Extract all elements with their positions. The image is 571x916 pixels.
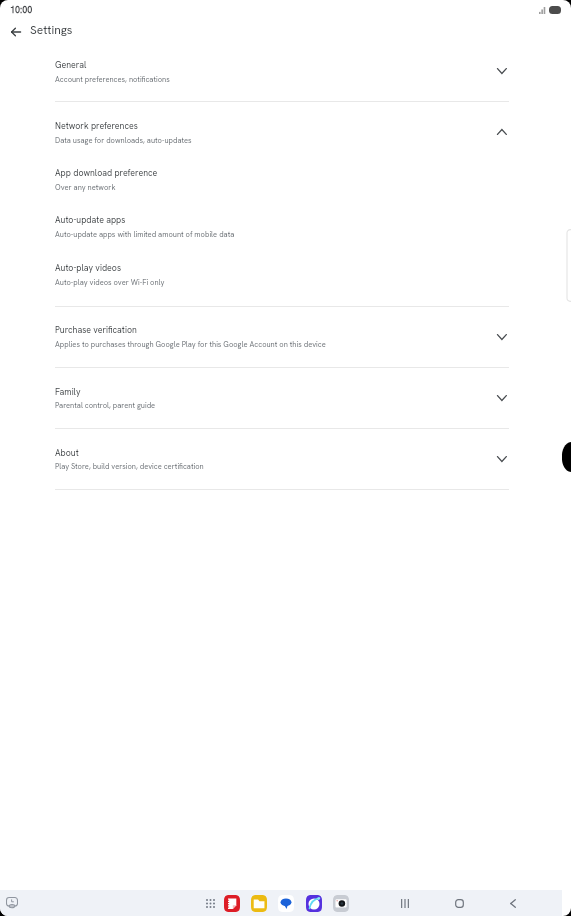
- staticText: Applies to purchases through Google Play…: [55, 339, 326, 349]
- button[interactable]: [55, 209, 509, 243]
- button[interactable]: [55, 54, 509, 88]
- button[interactable]: Back: [4, 20, 27, 43]
- staticText: About: [55, 447, 79, 458]
- button[interactable]: Internet: [306, 895, 322, 912]
- button[interactable]: Expand: [490, 325, 514, 349]
- button[interactable]: Home: [447, 891, 471, 915]
- staticText: Data usage for downloads, auto-updates: [55, 135, 192, 145]
- staticText: General: [55, 59, 87, 70]
- staticText: App download preference: [55, 167, 158, 178]
- button[interactable]: [55, 162, 509, 196]
- button[interactable]: Recents: [393, 891, 417, 915]
- staticText: Auto-play videos over Wi-Fi only: [55, 277, 165, 287]
- button[interactable]: Samsung Notes: [224, 895, 240, 912]
- button[interactable]: [55, 114, 509, 148]
- button[interactable]: Messages: [278, 895, 294, 912]
- button[interactable]: [55, 441, 509, 475]
- staticText: Settings: [30, 22, 73, 38]
- button[interactable]: [55, 257, 509, 291]
- staticText: Purchase verification: [55, 324, 137, 335]
- button[interactable]: Expand: [490, 59, 514, 83]
- staticText: Over any network: [55, 182, 116, 192]
- button[interactable]: Back: [501, 891, 525, 915]
- button[interactable]: [30, 21, 90, 42]
- button[interactable]: My Files: [251, 895, 267, 912]
- staticText: Play Store, build version, device certif…: [55, 461, 204, 471]
- staticText: Auto-update apps with limited amount of …: [55, 229, 235, 239]
- staticText: Auto-update apps: [55, 214, 126, 225]
- staticText: Family: [55, 386, 81, 397]
- button[interactable]: Expand: [490, 447, 514, 471]
- staticText: Network preferences: [55, 120, 138, 131]
- staticText: 10:00: [10, 4, 33, 16]
- button[interactable]: Apps: [201, 890, 219, 916]
- button[interactable]: Camera: [333, 895, 349, 912]
- button[interactable]: [55, 380, 509, 414]
- button[interactable]: Clock widget: [6, 897, 18, 908]
- staticText: Auto-play videos: [55, 262, 122, 273]
- staticText: Account preferences, notifications: [55, 74, 170, 84]
- button[interactable]: Collapse: [490, 120, 514, 144]
- button[interactable]: [55, 319, 509, 353]
- button[interactable]: Edge panel handle: [562, 442, 571, 472]
- button[interactable]: Expand: [490, 386, 514, 410]
- staticText: Parental control, parent guide: [55, 400, 156, 410]
